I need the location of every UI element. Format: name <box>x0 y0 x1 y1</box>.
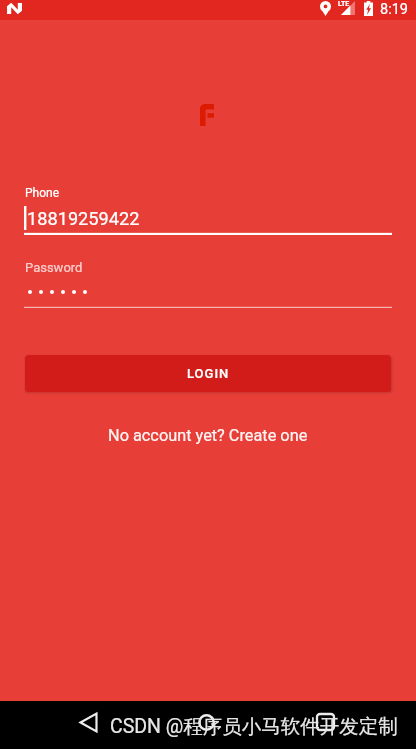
button[interactable]: Back <box>64 698 112 746</box>
button[interactable]: LOGIN <box>25 355 391 392</box>
button[interactable]: Home <box>182 698 230 746</box>
staticText: 18819259422 <box>27 208 140 229</box>
staticText: No account yet? Create one <box>108 426 308 445</box>
staticText: LTE <box>338 0 350 8</box>
staticText: Password <box>25 260 83 275</box>
staticText: 8:19 <box>380 1 408 18</box>
button[interactable]: Recents <box>301 698 349 746</box>
staticText: Phone <box>25 186 60 200</box>
staticText: LOGIN <box>187 366 230 381</box>
button[interactable]: No account yet? Create one <box>98 423 318 448</box>
staticText: CSDN @程序员小马软件开发定制 <box>110 714 398 739</box>
